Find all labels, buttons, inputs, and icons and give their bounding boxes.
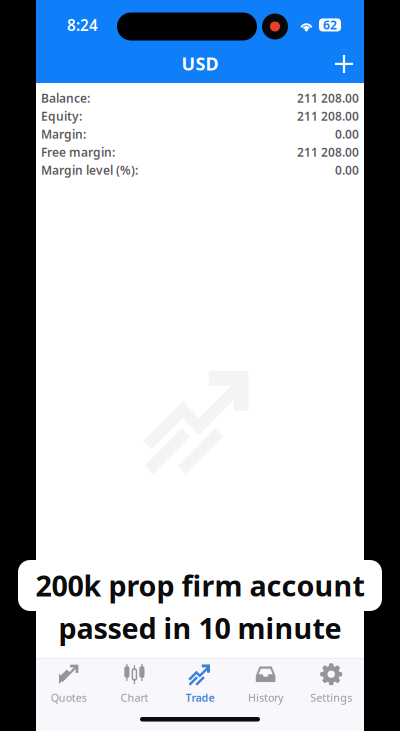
staticText: Quotes (51, 690, 87, 705)
staticText: 62 (323, 17, 337, 33)
staticText: passed in 10 minute (58, 608, 341, 647)
staticText: Trade (185, 690, 214, 705)
staticText: 211 208.00 (297, 144, 359, 160)
staticText: Chart (120, 690, 148, 705)
staticText: 200k prop firm account (35, 566, 364, 605)
button[interactable]: History (233, 659, 298, 711)
staticText: 8:24 (67, 14, 98, 35)
staticText: Margin: (41, 126, 86, 142)
button[interactable]: Quotes (36, 659, 102, 711)
staticText: 211 208.00 (297, 90, 359, 106)
staticText: Margin level (%): (41, 162, 138, 178)
staticText: History (248, 690, 283, 705)
staticText: 0.00 (335, 162, 359, 178)
button[interactable]: Settings (298, 659, 364, 711)
button[interactable]: Chart (102, 659, 167, 711)
staticText: Free margin: (41, 144, 115, 160)
button[interactable]: Add account (324, 42, 364, 82)
staticText: 211 208.00 (297, 108, 359, 124)
staticText: USD (181, 51, 218, 76)
staticText: Settings (310, 690, 352, 705)
staticText: Balance: (41, 90, 90, 106)
button[interactable]: Trade (167, 659, 233, 711)
staticText: Equity: (41, 108, 82, 124)
staticText: 0.00 (335, 126, 359, 142)
